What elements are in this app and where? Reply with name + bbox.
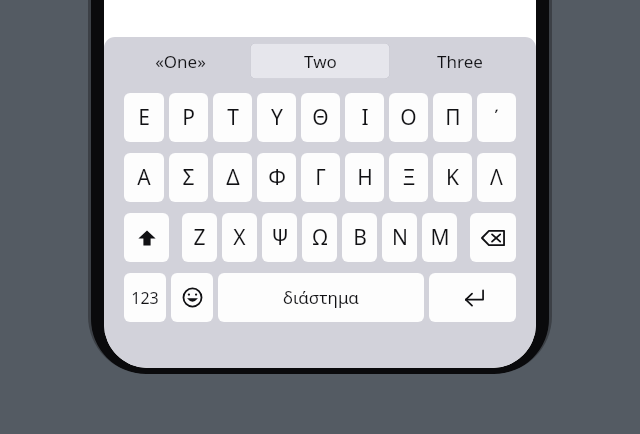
button[interactable]: Π — [433, 93, 472, 142]
button[interactable]: Ω — [302, 213, 337, 262]
button[interactable]: Ξ — [389, 153, 428, 202]
button[interactable]: Α — [124, 153, 164, 202]
staticText: «One» — [155, 50, 206, 73]
button[interactable]: Ζ — [182, 213, 217, 262]
staticText: ΄ — [494, 105, 499, 131]
button[interactable]: ΄ — [477, 93, 516, 142]
staticText: Δ — [226, 163, 240, 192]
staticText: Τ — [227, 103, 239, 132]
button[interactable]: Ι — [345, 93, 384, 142]
button[interactable]: Three — [390, 43, 530, 79]
staticText: Σ — [182, 163, 195, 192]
staticText: Χ — [233, 223, 246, 252]
staticText: Π — [445, 103, 461, 132]
button[interactable]: Χ — [222, 213, 257, 262]
staticText: Υ — [271, 103, 283, 132]
staticText: Ψ — [271, 223, 289, 252]
button[interactable]: 123 — [124, 273, 166, 322]
button[interactable]: Δ — [213, 153, 252, 202]
button[interactable]: «One» — [110, 43, 250, 79]
button[interactable]: Emoji — [171, 273, 213, 322]
staticText: Φ — [268, 163, 286, 192]
button[interactable]: Backspace — [470, 213, 516, 262]
button[interactable]: Ν — [382, 213, 417, 262]
button[interactable]: Θ — [301, 93, 340, 142]
staticText: Η — [357, 163, 373, 192]
button[interactable]: Ρ — [169, 93, 208, 142]
button[interactable]: Τ — [213, 93, 252, 142]
button[interactable]: Ψ — [262, 213, 297, 262]
button[interactable]: Ο — [389, 93, 428, 142]
staticText: Ζ — [193, 223, 206, 252]
staticText: Μ — [430, 223, 450, 252]
button[interactable]: διάστημα — [218, 273, 424, 322]
button[interactable]: Σ — [169, 153, 208, 202]
button[interactable]: Γ — [301, 153, 340, 202]
staticText: Κ — [446, 163, 459, 192]
staticText: Ε — [138, 103, 150, 132]
button[interactable]: Φ — [257, 153, 296, 202]
staticText: Ν — [392, 223, 408, 252]
staticText: Β — [353, 223, 367, 252]
button[interactable]: Shift — [124, 213, 169, 262]
button[interactable]: Λ — [477, 153, 516, 202]
staticText: Two — [304, 50, 337, 73]
button[interactable]: Μ — [422, 213, 457, 262]
staticText: Ξ — [402, 163, 416, 192]
button[interactable]: Β — [342, 213, 377, 262]
staticText: Ρ — [182, 103, 195, 132]
staticText: Three — [437, 50, 483, 73]
button[interactable]: Κ — [433, 153, 472, 202]
staticText: 123 — [131, 287, 159, 309]
staticText: Θ — [312, 103, 329, 132]
staticText: Ω — [312, 223, 328, 252]
button[interactable]: Two — [250, 43, 390, 79]
button[interactable]: Η — [345, 153, 384, 202]
button[interactable]: Enter — [429, 273, 516, 322]
button[interactable]: Υ — [257, 93, 296, 142]
staticText: διάστημα — [283, 286, 359, 309]
staticText: Ο — [400, 103, 417, 132]
button[interactable]: Ε — [124, 93, 164, 142]
staticText: Ι — [361, 103, 369, 132]
staticText: Λ — [490, 163, 503, 192]
staticText: Γ — [315, 163, 326, 192]
staticText: Α — [137, 163, 151, 192]
